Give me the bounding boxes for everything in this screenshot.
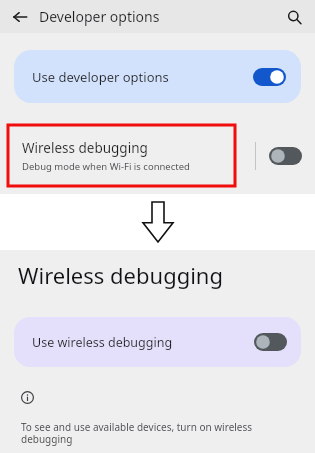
button[interactable]: Use wireless debugging bbox=[14, 317, 301, 367]
button[interactable]: Use developer options bbox=[14, 50, 301, 103]
button[interactable] bbox=[269, 147, 302, 165]
staticText: Developer options bbox=[39, 7, 160, 26]
button[interactable]: Back bbox=[7, 4, 33, 30]
button[interactable]: Search bbox=[281, 4, 307, 30]
button[interactable]: Wireless debugging bbox=[22, 124, 255, 188]
staticText: Use wireless debugging bbox=[32, 334, 254, 351]
staticText: To see and use available devices, turn o… bbox=[21, 420, 289, 446]
staticText: Wireless debugging bbox=[18, 260, 223, 290]
staticText: Use developer options bbox=[32, 68, 253, 86]
staticText: Debug mode when Wi-Fi is connected bbox=[22, 160, 190, 173]
staticText: Wireless debugging bbox=[22, 139, 148, 157]
